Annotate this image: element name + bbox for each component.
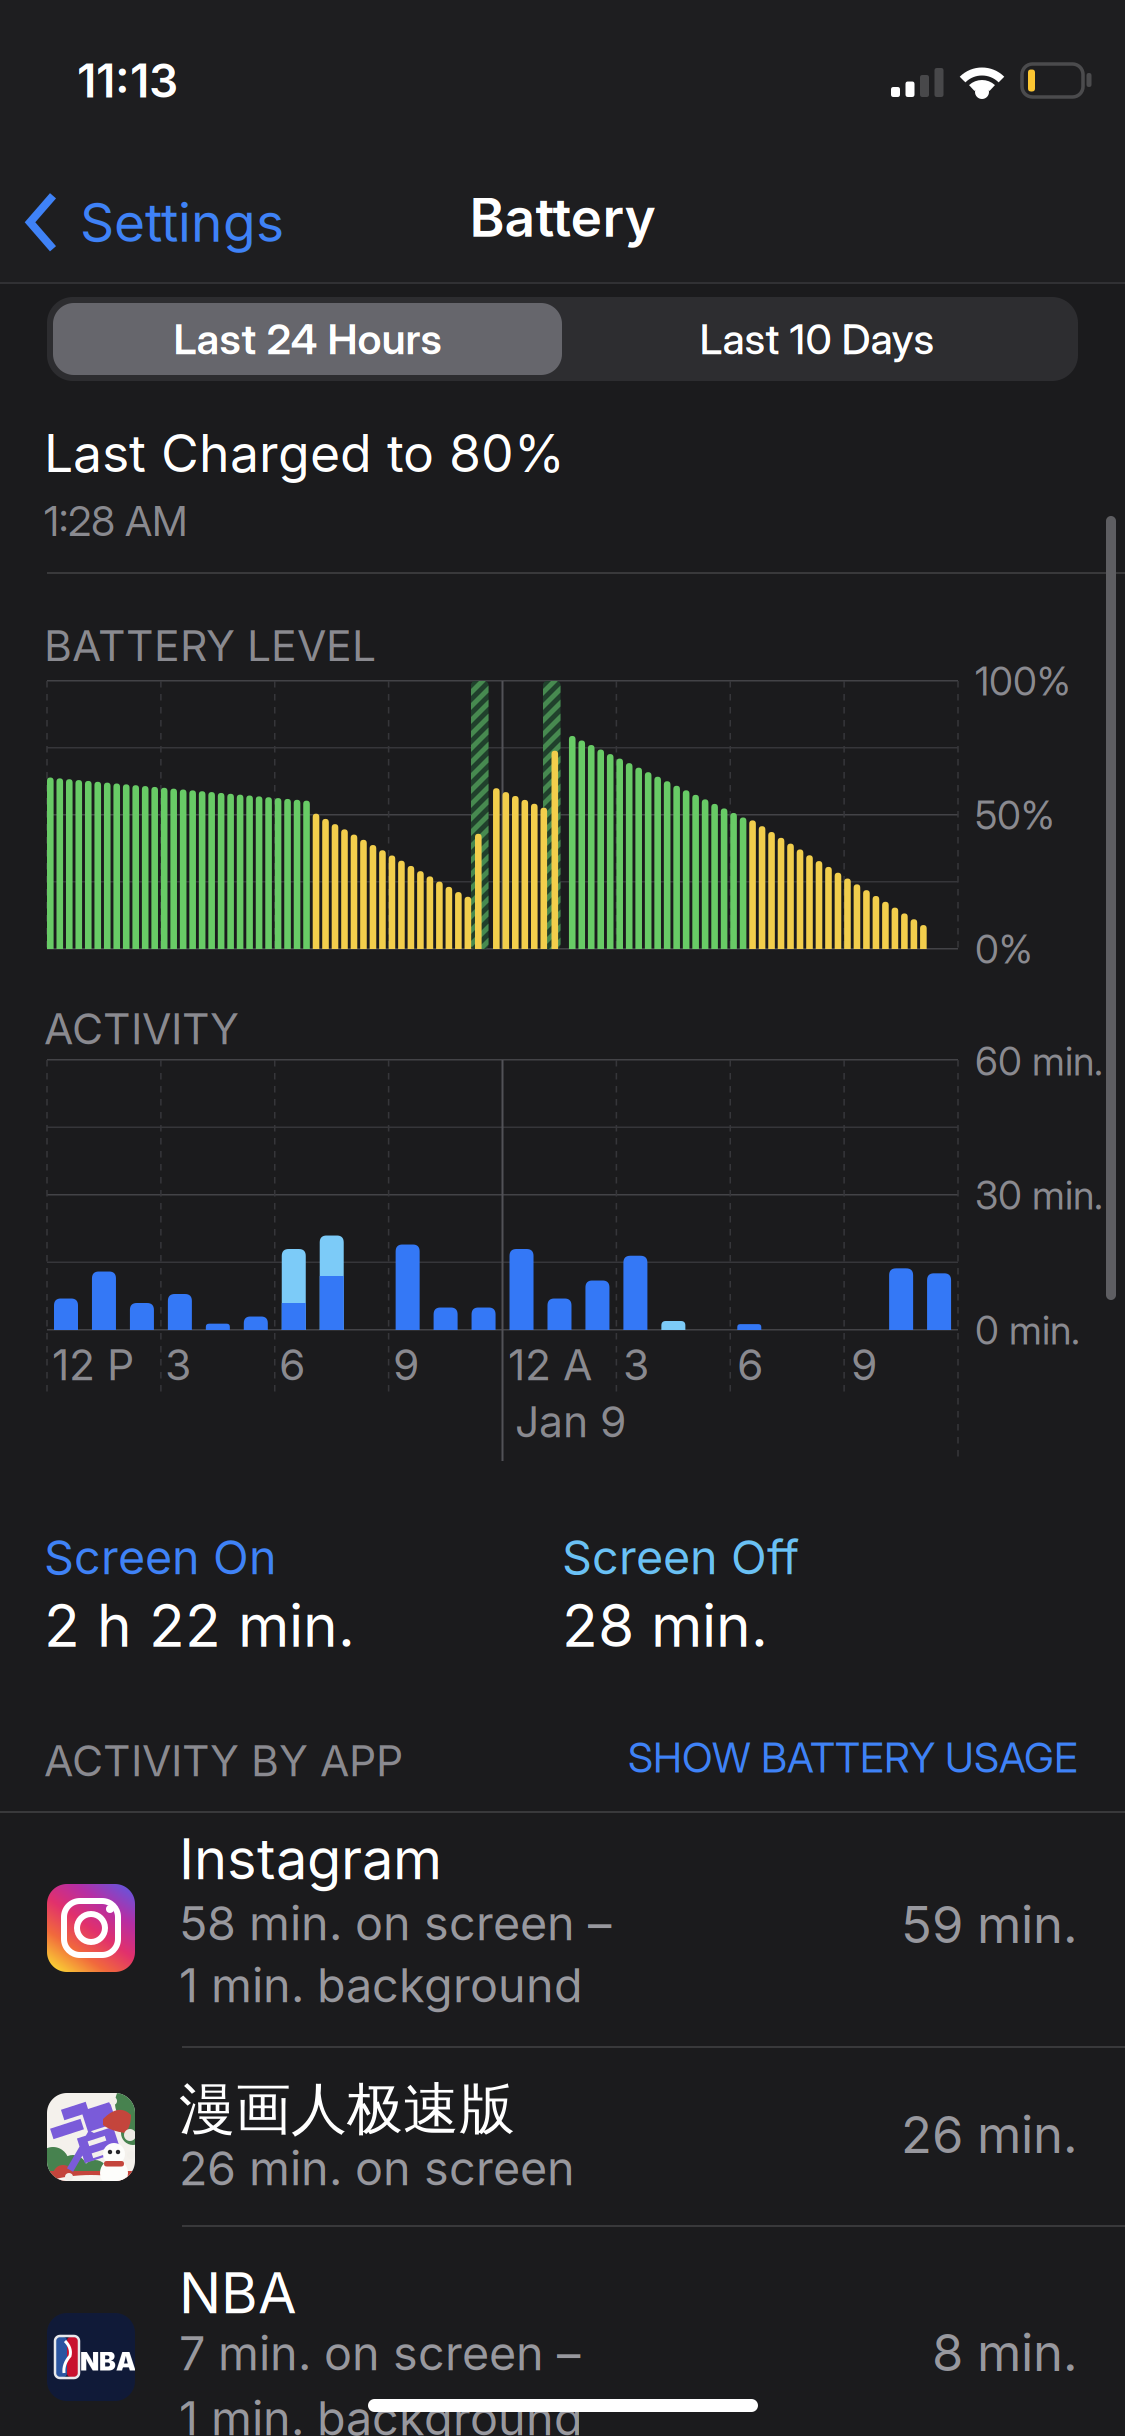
staticText: ACTIVITY BY APP xyxy=(44,1735,403,1787)
staticText: 26 min. on screen xyxy=(179,2140,575,2196)
staticText: 3 xyxy=(165,1339,191,1391)
staticText: Screen On xyxy=(44,1529,277,1585)
staticText: Last Charged to 80% xyxy=(44,422,565,485)
staticText: 26 min. xyxy=(901,2104,1078,2165)
staticText: 11:13 xyxy=(77,53,178,109)
button[interactable]: Back xyxy=(26,190,298,254)
button[interactable]: Instagram xyxy=(0,1812,1125,2046)
staticText: 9 xyxy=(393,1339,419,1391)
staticText: 9 xyxy=(851,1339,877,1391)
staticText: Last 24 Hours xyxy=(173,314,441,364)
staticText: 7 min. on screen – xyxy=(179,2325,580,2381)
button[interactable]: 漫画人极速版 xyxy=(0,2048,1125,2225)
staticText: 6 xyxy=(737,1339,763,1391)
staticText: 30 min. xyxy=(975,1172,1103,1219)
staticText: Battery xyxy=(469,185,655,249)
staticText: NBA xyxy=(80,2346,136,2377)
staticText: BATTERY LEVEL xyxy=(44,620,376,672)
staticText: 1:28 AM xyxy=(44,496,188,546)
staticText: 59 min. xyxy=(901,1894,1078,1955)
staticText: 8 min. xyxy=(932,2322,1078,2383)
staticText: 28 min. xyxy=(562,1590,768,1661)
staticText: ACTIVITY xyxy=(44,1003,239,1055)
button[interactable]: Last 24 Hours xyxy=(53,303,562,375)
button[interactable]: Last 10 Days xyxy=(562,297,1072,381)
staticText: 1 min. background xyxy=(179,1957,583,2013)
staticText: 2 h 22 min. xyxy=(44,1590,355,1661)
staticText: Settings xyxy=(80,190,284,254)
staticText: Jan 9 xyxy=(515,1396,626,1448)
staticText: 60 min. xyxy=(975,1038,1103,1085)
staticText: 12 P xyxy=(52,1339,134,1391)
staticText: 12 A xyxy=(508,1339,592,1391)
staticText: 100% xyxy=(975,658,1071,705)
staticText: 58 min. on screen – xyxy=(179,1895,611,1951)
staticText: 50% xyxy=(975,792,1055,839)
staticText: 6 xyxy=(279,1339,305,1391)
staticText: 0 min. xyxy=(975,1307,1080,1354)
staticText: Screen Off xyxy=(562,1529,799,1585)
staticText: 1 min. background xyxy=(179,2390,583,2436)
staticText: NBA xyxy=(179,2259,297,2327)
staticText: 漫画人极速版 xyxy=(179,2074,515,2144)
staticText: 3 xyxy=(623,1339,649,1391)
staticText: Instagram xyxy=(179,1825,442,1893)
button[interactable]: NBA xyxy=(0,2227,1125,2436)
staticText: Last 10 Days xyxy=(699,314,934,364)
staticText: SHOW BATTERY USAGE xyxy=(628,1733,1078,1782)
staticText: 0% xyxy=(975,926,1033,973)
button[interactable]: SHOW BATTERY USAGE xyxy=(478,1733,1078,1782)
